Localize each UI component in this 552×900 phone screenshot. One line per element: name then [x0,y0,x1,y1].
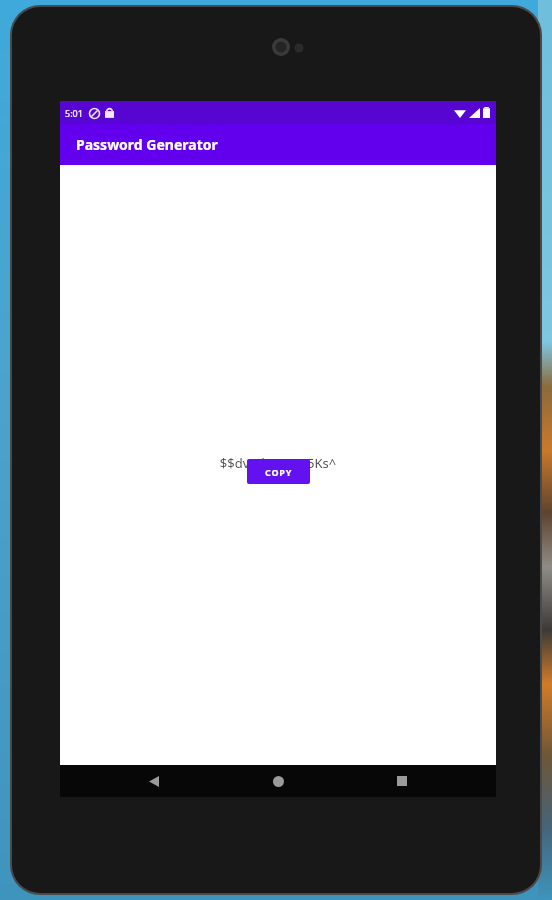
staticText: COPY [265,466,293,478]
button[interactable]: Home [248,765,308,797]
button[interactable]: Recent apps [372,765,432,797]
button[interactable]: Back [124,765,184,797]
button[interactable]: COPY [247,459,310,484]
staticText: $$dv2d%A#~e5Ks^ [60,454,496,472]
staticText: Password Generator [76,135,218,154]
staticText: 5:01 [65,107,83,119]
